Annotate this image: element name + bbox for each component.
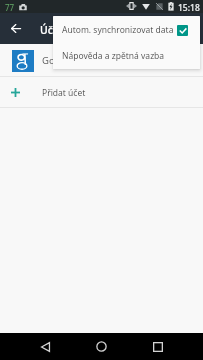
button[interactable]: Recents bbox=[145, 333, 171, 360]
staticText: 15:18 bbox=[178, 2, 200, 14]
button[interactable]: Autom. synchronizovat data bbox=[53, 16, 200, 43]
staticText: Přidat účet bbox=[42, 87, 86, 99]
button[interactable]: Google bbox=[0, 44, 203, 77]
button[interactable]: Přidat účet bbox=[0, 77, 203, 108]
staticText: Google bbox=[42, 54, 75, 67]
button[interactable]: Nápověda a zpětná vazba bbox=[53, 43, 200, 69]
button[interactable]: Home bbox=[89, 333, 114, 360]
staticText: Autom. synchronizovat data bbox=[62, 24, 174, 36]
button[interactable]: Back bbox=[0, 13, 32, 44]
staticText: Nápověda a zpětná vazba bbox=[62, 50, 165, 62]
staticText: 77 bbox=[5, 2, 15, 13]
staticText: Účty bbox=[40, 23, 63, 37]
button[interactable]: Back bbox=[33, 333, 58, 360]
